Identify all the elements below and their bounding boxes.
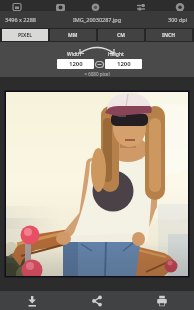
staticText: Width [67, 51, 81, 58]
button[interactable]: CM [98, 29, 144, 41]
button[interactable]: 1200 [57, 59, 94, 69]
staticText: PIXEL [18, 32, 32, 39]
staticText: MM [68, 32, 78, 39]
button[interactable] [64, 291, 129, 310]
button[interactable] [0, 291, 64, 310]
staticText: INCH [162, 32, 176, 39]
button[interactable]: MM [50, 29, 96, 41]
button[interactable]: INCH [146, 29, 192, 41]
staticText: = 6080 pixel [0, 71, 194, 77]
button[interactable]: PIXEL [2, 29, 48, 41]
staticText: 300 dpi [168, 16, 188, 23]
staticText: 3496 x 2288 [5, 16, 36, 23]
staticText: CM [117, 32, 125, 39]
staticText: IMG_20030287.jpg [73, 16, 122, 23]
staticText: 1200 [117, 60, 131, 68]
button[interactable] [129, 291, 194, 310]
staticText: Height [108, 51, 124, 58]
staticText: 1200 [69, 60, 83, 68]
button[interactable]: 1200 [105, 59, 142, 69]
